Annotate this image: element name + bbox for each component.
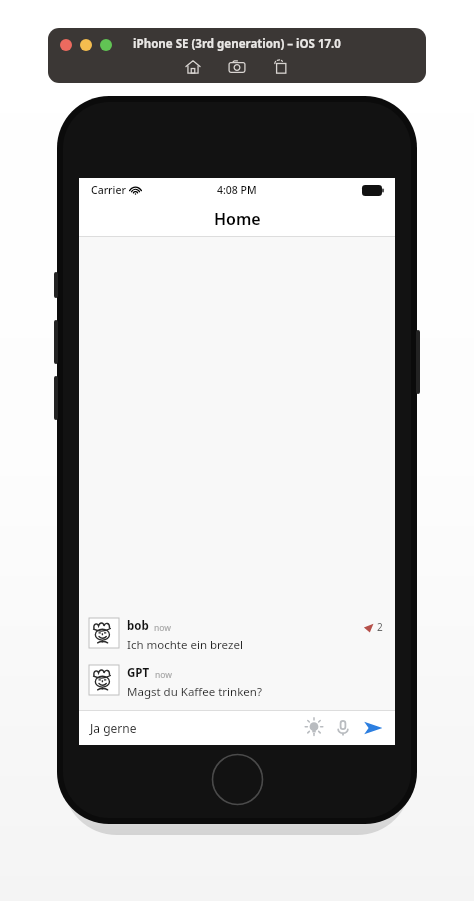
other: Reaction (363, 622, 374, 633)
button[interactable]: Avatar (79, 661, 395, 704)
staticText: now (155, 669, 172, 681)
button[interactable]: Close (60, 39, 72, 51)
staticText: Ich mochte ein brezel (127, 637, 243, 653)
staticText: GPT (127, 665, 150, 681)
button[interactable]: Home (182, 56, 204, 78)
staticText: iPhone SE (3rd generation) – iOS 17.0 (48, 36, 426, 52)
button[interactable]: Zoom (100, 39, 112, 51)
staticText: 2 (377, 620, 383, 634)
button[interactable]: Send (362, 717, 384, 739)
button[interactable]: Avatar (79, 614, 395, 657)
button[interactable]: Avatar (89, 665, 119, 695)
staticText: 4:08 PM (217, 183, 257, 197)
button[interactable]: Avatar (89, 618, 119, 648)
staticText: Magst du Kaffee trinken? (127, 684, 262, 700)
button[interactable]: Screenshot (226, 56, 248, 78)
button[interactable]: Home button (211, 753, 264, 806)
button[interactable]: Rotate (270, 56, 292, 78)
staticText: Carrier (91, 183, 126, 197)
staticText: now (154, 622, 171, 634)
button[interactable]: Ja gerne (90, 720, 303, 736)
staticText: Ja gerne (90, 720, 137, 736)
button[interactable]: Reaction (359, 618, 385, 634)
button[interactable]: Minimize (80, 39, 92, 51)
button[interactable]: Voice input (333, 718, 353, 738)
staticText: bob (127, 618, 149, 634)
staticText: Home (214, 208, 261, 230)
button[interactable]: Suggestions (303, 717, 325, 739)
